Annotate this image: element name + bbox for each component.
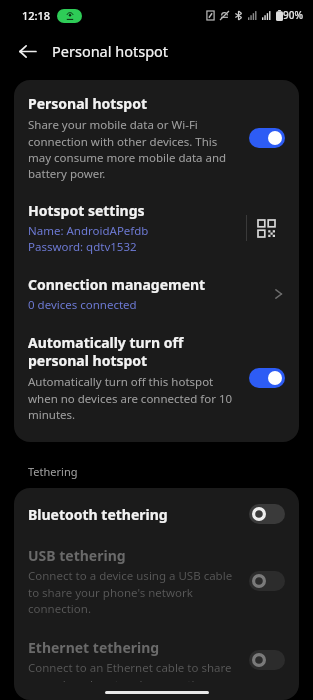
- button[interactable]: Personal hotspot: [28, 80, 285, 193]
- staticText: Hotspot settings: [28, 201, 145, 220]
- button[interactable]: Toggle: [249, 368, 285, 388]
- button[interactable]: Toggle: [249, 650, 285, 670]
- staticText: Connection management: [28, 275, 206, 294]
- staticText: Connect to a device using a USB cable to…: [28, 568, 239, 616]
- button[interactable]: Connection management: [28, 265, 285, 323]
- staticText: 0 devices connected: [28, 297, 137, 313]
- staticText: USB tethering: [28, 546, 126, 565]
- button[interactable]: USB tethering: [28, 538, 285, 628]
- staticText: Tethering: [28, 464, 78, 479]
- staticText: Ethernet tethering: [28, 638, 160, 657]
- staticText: 12:18: [22, 8, 51, 23]
- button[interactable]: Toggle: [249, 128, 285, 148]
- staticText: Automatically turn off this hotspot when…: [28, 374, 239, 422]
- button[interactable]: Automatically turn off personal hotspot: [28, 323, 285, 442]
- button[interactable]: Toggle: [249, 504, 285, 524]
- staticText: Automatically turn off personal hotspot: [28, 333, 184, 370]
- button[interactable]: Bluetooth tethering: [28, 488, 285, 538]
- staticText: Password: qdtv1532: [28, 239, 137, 255]
- button[interactable]: Hotspot settings: [28, 193, 285, 265]
- staticText: Share your mobile data or Wi-Fi connecti…: [28, 117, 239, 181]
- staticText: 90%: [283, 8, 303, 22]
- staticText: Personal hotspot: [28, 94, 148, 113]
- staticText: Name: AndroidAPefdb: [28, 223, 149, 239]
- staticText: Personal hotspot: [52, 41, 169, 61]
- button[interactable]: Show QR code: [247, 211, 285, 245]
- button[interactable]: Back: [10, 34, 44, 68]
- staticText: Connect to an Ethernet cable to share yo…: [28, 660, 239, 682]
- staticText: Bluetooth tethering: [28, 505, 249, 524]
- button[interactable]: Toggle: [249, 571, 285, 591]
- button[interactable]: Ethernet tethering: [28, 628, 285, 700]
